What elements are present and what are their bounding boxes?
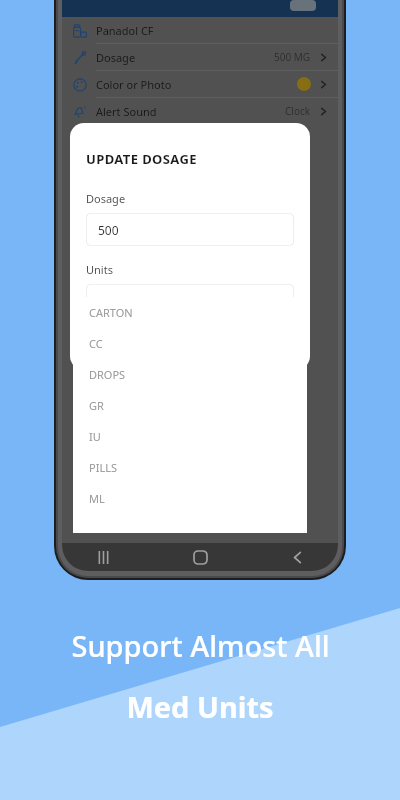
staticText: PILLS — [89, 460, 117, 475]
button[interactable]: GR — [73, 390, 307, 421]
staticText: Support Almost All — [71, 626, 330, 665]
staticText: ML — [89, 491, 105, 506]
button[interactable]: Back — [284, 544, 310, 570]
button[interactable]: PILLS — [73, 452, 307, 483]
staticText: CARTON — [89, 305, 133, 320]
staticText: 500 MG — [274, 50, 311, 64]
button[interactable]: Home — [187, 544, 213, 570]
button[interactable]: Dosage — [62, 44, 338, 70]
staticText: UPDATE DOSAGE — [86, 150, 197, 168]
staticText: Med Units — [126, 687, 274, 726]
staticText: DROPS — [89, 367, 126, 382]
button[interactable]: MG — [86, 284, 294, 317]
staticText: IU — [89, 429, 101, 444]
button[interactable] — [86, 334, 294, 367]
staticText: Clock — [285, 104, 311, 118]
staticText: GR — [89, 398, 104, 413]
staticText: Color or Photo — [96, 77, 172, 92]
button[interactable]: ML — [73, 483, 307, 514]
staticText: CC — [89, 336, 103, 351]
staticText: Panadol CF — [96, 23, 154, 38]
button[interactable]: IU — [73, 421, 307, 452]
staticText: Dosage — [96, 50, 136, 65]
button[interactable]: CC — [73, 328, 307, 359]
button[interactable]: CARTON — [73, 297, 307, 328]
button[interactable]: Color or Photo — [62, 71, 338, 97]
staticText: 500 — [98, 222, 119, 238]
staticText: Alert Sound — [96, 104, 157, 119]
staticText: Units — [86, 262, 113, 277]
button[interactable]: 500 — [86, 213, 294, 246]
button[interactable]: DROPS — [73, 359, 307, 390]
staticText: Dosage — [86, 191, 126, 206]
button[interactable]: Alert Sound — [62, 98, 338, 124]
button[interactable]: Panadol CF — [62, 17, 338, 43]
button[interactable]: Recents — [90, 544, 116, 570]
button[interactable]: More — [290, 0, 316, 11]
